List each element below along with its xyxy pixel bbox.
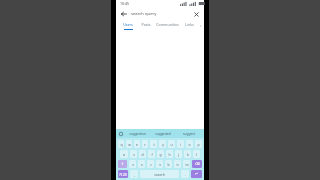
staticText: search bbox=[154, 172, 165, 177]
button[interactable]: Voice input bbox=[118, 131, 124, 137]
button[interactable]: a bbox=[120, 150, 128, 158]
staticText: w bbox=[128, 142, 131, 147]
staticText: y bbox=[162, 142, 164, 147]
staticText: g bbox=[159, 152, 162, 157]
staticText: v bbox=[159, 162, 161, 167]
button[interactable]: g bbox=[157, 150, 164, 158]
button[interactable]: suggest bbox=[176, 129, 202, 138]
staticText: z bbox=[132, 162, 134, 167]
button[interactable]: Backspace bbox=[192, 160, 202, 168]
button[interactable]: d bbox=[139, 150, 146, 158]
staticText: b bbox=[167, 162, 170, 167]
staticText: . bbox=[185, 172, 186, 177]
button[interactable]: suggested bbox=[150, 129, 176, 138]
staticText: Posts bbox=[141, 22, 151, 27]
staticText: j bbox=[178, 152, 179, 157]
button[interactable]: k bbox=[184, 150, 191, 158]
button[interactable]: Users bbox=[119, 20, 137, 31]
staticText: h bbox=[168, 152, 171, 157]
staticText: Links bbox=[185, 22, 194, 27]
staticText: suggest bbox=[183, 132, 195, 136]
staticText: a bbox=[123, 152, 125, 157]
staticText: suggestion bbox=[129, 132, 146, 136]
staticText: ⇧ bbox=[121, 162, 124, 166]
button[interactable]: Communities bbox=[155, 20, 180, 31]
staticText: t bbox=[153, 142, 155, 147]
staticText: suggested bbox=[155, 132, 171, 136]
staticText: d bbox=[141, 152, 144, 157]
button[interactable]: . bbox=[181, 170, 189, 178]
button[interactable]: y bbox=[159, 140, 166, 148]
staticText: search query bbox=[131, 11, 157, 17]
button[interactable]: o bbox=[186, 140, 193, 148]
button[interactable]: Back bbox=[119, 9, 129, 19]
button[interactable]: h bbox=[166, 150, 173, 158]
button[interactable]: Clear search bbox=[191, 9, 201, 19]
staticText: , bbox=[134, 172, 135, 177]
staticText: o bbox=[188, 142, 191, 147]
staticText: ↵ bbox=[195, 172, 198, 176]
staticText: c bbox=[150, 162, 152, 167]
staticText: 10:45 bbox=[120, 1, 129, 6]
button[interactable]: Enter bbox=[191, 170, 202, 178]
staticText: u bbox=[170, 142, 173, 147]
staticText: x bbox=[141, 162, 143, 167]
staticText: Communities bbox=[156, 22, 179, 27]
staticText: k bbox=[187, 152, 189, 157]
button[interactable]: q bbox=[118, 140, 124, 148]
button[interactable]: More tabs bbox=[198, 20, 203, 31]
staticText: e bbox=[136, 142, 138, 147]
staticText: f bbox=[151, 152, 153, 157]
button[interactable]: m bbox=[183, 160, 190, 168]
button[interactable]: suggestion bbox=[124, 129, 150, 138]
button[interactable]: v bbox=[156, 160, 163, 168]
staticText: l bbox=[196, 152, 197, 157]
button[interactable]: u bbox=[168, 140, 175, 148]
button[interactable]: b bbox=[165, 160, 172, 168]
button[interactable]: x bbox=[138, 160, 145, 168]
button[interactable]: Links bbox=[180, 20, 198, 31]
staticText: m bbox=[185, 162, 189, 167]
button[interactable]: c bbox=[147, 160, 154, 168]
staticText: › bbox=[200, 23, 202, 28]
button[interactable]: s bbox=[130, 150, 137, 158]
staticText: p bbox=[197, 142, 200, 147]
button[interactable]: w bbox=[126, 140, 132, 148]
button[interactable]: i bbox=[177, 140, 184, 148]
staticText: ⌫ bbox=[195, 162, 200, 166]
button[interactable]: Symbols bbox=[118, 170, 128, 178]
button[interactable]: r bbox=[142, 140, 148, 148]
staticText: q bbox=[120, 142, 123, 147]
staticText: s bbox=[133, 152, 135, 157]
button[interactable]: f bbox=[148, 150, 155, 158]
button[interactable]: l bbox=[193, 150, 200, 158]
staticText: r bbox=[144, 142, 146, 147]
staticText: ?123 bbox=[119, 172, 127, 177]
button[interactable]: Shift bbox=[118, 160, 127, 168]
staticText: Users bbox=[123, 22, 133, 27]
button[interactable]: e bbox=[134, 140, 140, 148]
button[interactable]: search query bbox=[131, 7, 191, 20]
staticText: n bbox=[176, 162, 179, 167]
button[interactable]: z bbox=[129, 160, 136, 168]
button[interactable]: j bbox=[175, 150, 182, 158]
button[interactable]: , bbox=[130, 170, 138, 178]
button[interactable]: t bbox=[150, 140, 157, 148]
staticText: i bbox=[180, 142, 181, 147]
button[interactable]: Posts bbox=[137, 20, 155, 31]
button[interactable]: p bbox=[195, 140, 202, 148]
button[interactable]: search bbox=[140, 170, 179, 178]
button[interactable]: n bbox=[174, 160, 181, 168]
